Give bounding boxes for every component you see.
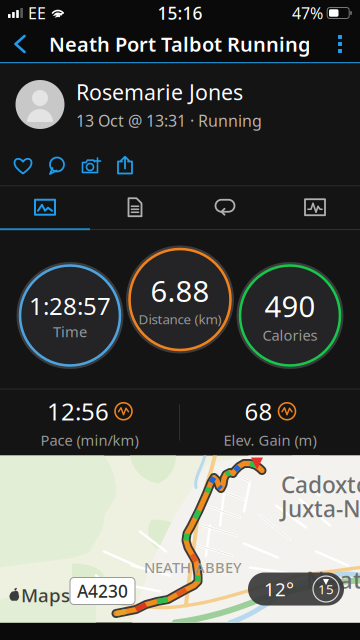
button[interactable]: More options: [320, 26, 360, 62]
button[interactable]: Add photo: [74, 150, 108, 180]
staticText: NEATH ABBEY: [144, 557, 242, 577]
staticText: 13 Oct @ 13:31 · Running: [76, 110, 262, 131]
staticText: 1:28:57: [29, 290, 111, 322]
button[interactable]: Charts: [270, 186, 360, 228]
button[interactable]: Comment: [40, 150, 74, 180]
button[interactable]: Laps: [180, 186, 270, 228]
staticText: A4230: [77, 579, 128, 602]
staticText: Maps: [21, 582, 70, 607]
button[interactable]: Share: [108, 150, 142, 180]
staticText: 47%: [292, 2, 323, 24]
staticText: Elev. Gain (m): [223, 430, 316, 450]
staticText: 15:16: [157, 1, 202, 24]
staticText: Distance (km): [138, 310, 221, 328]
staticText: Neath Port Talbot Running: [49, 31, 311, 57]
staticText: Calories: [262, 325, 317, 345]
staticText: Pace (min/km): [40, 430, 138, 450]
button[interactable]: Details: [90, 186, 180, 228]
staticText: Cadoxton: [281, 469, 360, 500]
staticText: Rosemarie Jones: [76, 78, 243, 106]
button[interactable]: Back: [0, 26, 40, 62]
staticText: 12:56: [47, 395, 109, 427]
staticText: 490: [264, 286, 315, 325]
button[interactable]: Like: [6, 150, 40, 180]
staticText: Juxta-Neath: [281, 493, 360, 524]
staticText: 68: [244, 395, 272, 427]
staticText: 15: [318, 580, 334, 598]
staticText: EE: [28, 2, 46, 24]
button[interactable]: Photos: [0, 186, 90, 228]
staticText: Neath: [306, 563, 360, 595]
staticText: 6.88: [150, 271, 209, 310]
staticText: Time: [53, 322, 87, 341]
staticText: 12°: [264, 577, 294, 601]
